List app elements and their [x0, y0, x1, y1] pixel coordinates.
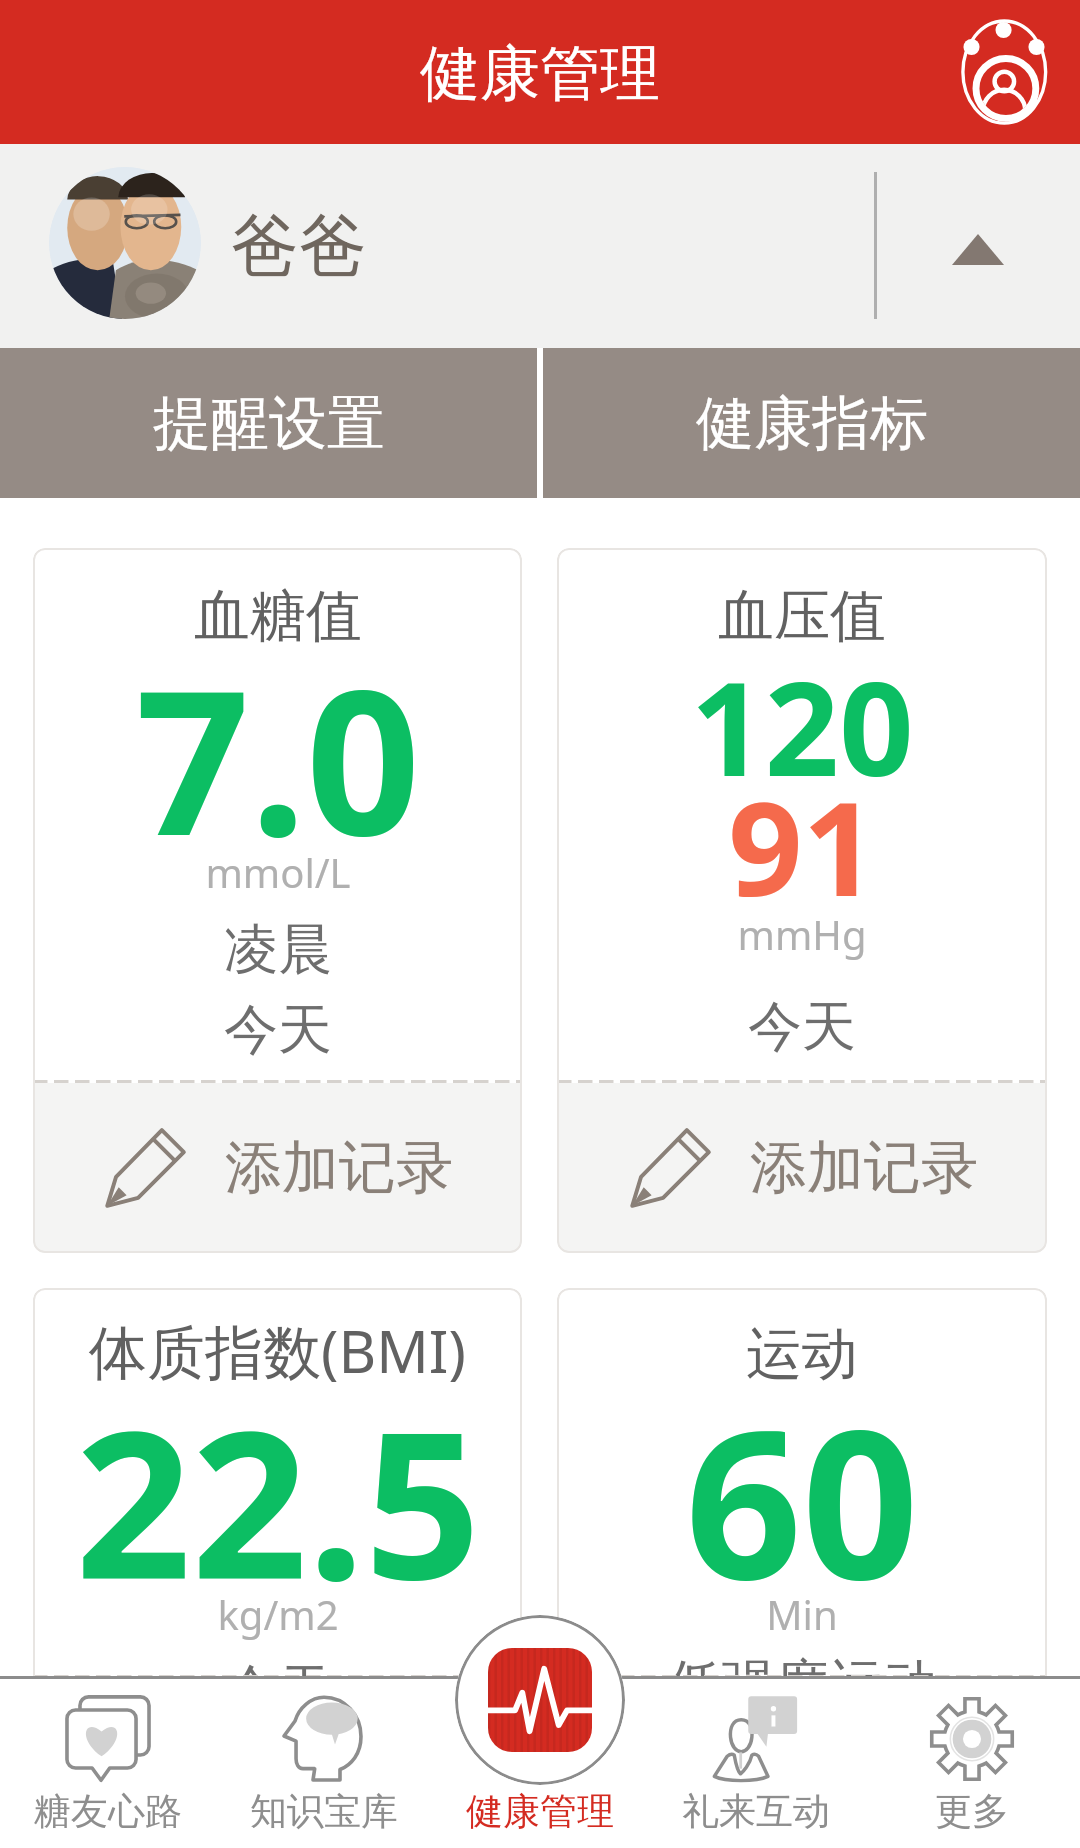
- button[interactable]: 添加记录: [557, 1083, 1047, 1253]
- staticText: 体质指数(BMI): [89, 1311, 466, 1390]
- staticText: 今天: [224, 1656, 332, 1724]
- staticText: 血糖值: [194, 581, 362, 652]
- staticText: 运动: [746, 1319, 858, 1390]
- button[interactable]: 添加记录: [33, 1083, 522, 1253]
- staticText: 健康指标: [696, 387, 928, 460]
- staticText: 120: [690, 637, 914, 814]
- staticText: mmol/L: [205, 845, 351, 899]
- staticText: 添加记录: [750, 1727, 978, 1799]
- staticText: 血压值: [718, 581, 886, 652]
- staticText: 添加记录: [225, 1727, 453, 1799]
- staticText: mmHg: [737, 907, 867, 961]
- button[interactable]: 体质指数(BMI): [33, 1288, 522, 1848]
- staticText: 知识宝库: [250, 1788, 398, 1835]
- staticText: 健康管理: [466, 1788, 614, 1835]
- button[interactable]: 更多: [864, 1679, 1080, 1848]
- button[interactable]: 添加记录: [557, 1678, 1047, 1848]
- button[interactable]: 糖友心路: [0, 1679, 216, 1848]
- button[interactable]: 提醒设置: [0, 348, 537, 498]
- staticText: 健康管理: [420, 36, 660, 112]
- staticText: 添加记录: [225, 1132, 453, 1204]
- staticText: 7.0: [135, 621, 421, 893]
- staticText: 22.5: [75, 1362, 481, 1638]
- button[interactable]: 健康指标: [543, 348, 1080, 498]
- staticText: 凌晨: [224, 916, 332, 984]
- button[interactable]: 添加记录: [33, 1678, 522, 1848]
- staticText: 60: [685, 1361, 919, 1639]
- staticText: 91: [728, 757, 877, 934]
- staticText: 爸爸: [231, 204, 367, 290]
- staticText: kg/m2: [217, 1587, 339, 1641]
- staticText: 提醒设置: [153, 387, 385, 460]
- staticText: 今天: [748, 993, 856, 1061]
- button[interactable]: 收起: [876, 144, 1080, 348]
- button[interactable]: 家庭成员: [948, 16, 1060, 128]
- button[interactable]: 血糖值: [33, 548, 522, 1253]
- staticText: 更多: [935, 1788, 1009, 1835]
- button[interactable]: 健康管理: [455, 1615, 625, 1785]
- staticText: Min: [766, 1587, 838, 1641]
- button[interactable]: 血压值: [557, 548, 1047, 1253]
- button[interactable]: 健康管理: [432, 1679, 648, 1848]
- staticText: 礼来互动: [682, 1788, 830, 1835]
- staticText: 糖友心路: [34, 1788, 182, 1835]
- button[interactable]: 爸爸: [0, 144, 1080, 348]
- button[interactable]: 运动: [557, 1288, 1047, 1848]
- staticText: 低强度运动: [667, 1651, 937, 1719]
- staticText: 今天: [224, 996, 332, 1064]
- button[interactable]: 知识宝库: [216, 1679, 432, 1848]
- button[interactable]: 礼来互动: [648, 1679, 864, 1848]
- staticText: 添加记录: [750, 1132, 978, 1204]
